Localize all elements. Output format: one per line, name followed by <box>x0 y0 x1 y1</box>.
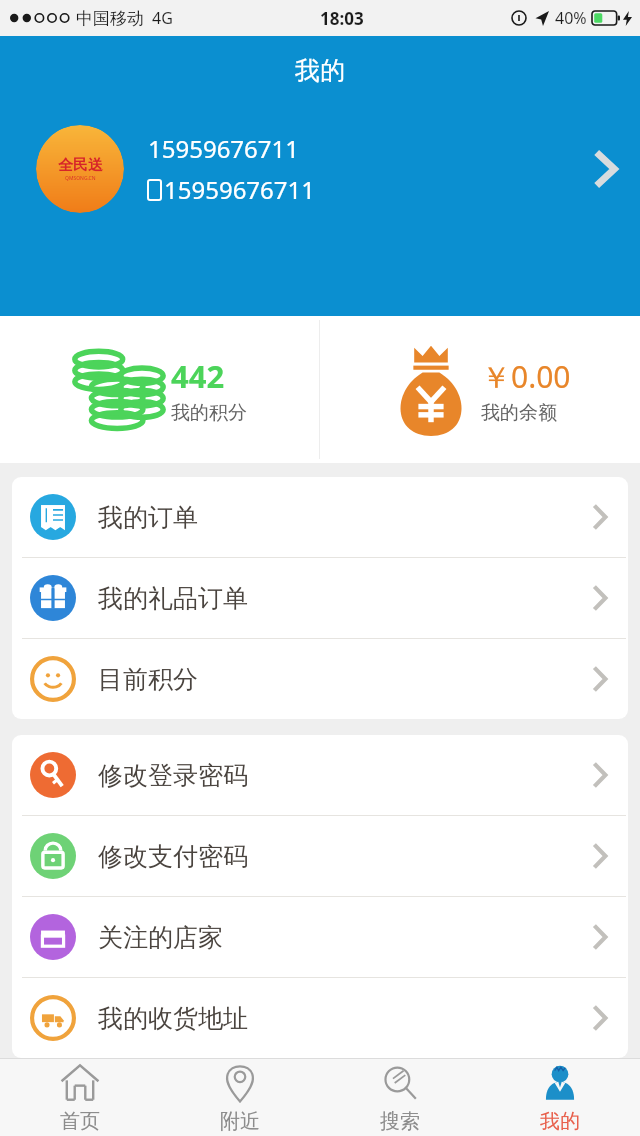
staticText: QMSONG.CN <box>65 175 96 182</box>
staticText: 15959676711 <box>148 132 300 165</box>
staticText: 40% <box>555 7 587 29</box>
button[interactable]: 我的订单 <box>12 477 628 557</box>
button[interactable]: 442 <box>0 316 319 463</box>
button[interactable]: 目前积分 <box>12 639 628 719</box>
staticText: 附近 <box>220 1109 260 1134</box>
staticText: 我的礼品订单 <box>98 583 248 614</box>
staticText: 我的余额 <box>481 401 557 425</box>
staticText: 中国移动 <box>76 8 144 29</box>
staticText: 4G <box>152 7 173 29</box>
staticText: 我的收货地址 <box>98 1003 248 1034</box>
staticText: ￥0.00 <box>481 356 571 397</box>
button[interactable]: 附近 <box>160 1059 320 1136</box>
staticText: 首页 <box>60 1109 100 1134</box>
button[interactable]: 我的礼品订单 <box>12 558 628 638</box>
button[interactable]: 关注的店家 <box>12 897 628 977</box>
staticText: 15959676711 <box>164 173 316 206</box>
button[interactable]: 修改支付密码 <box>12 816 628 896</box>
staticText: 18:03 <box>320 7 364 30</box>
other: Profile details <box>592 146 618 192</box>
staticText: 我的积分 <box>171 401 247 425</box>
staticText: 我的 <box>540 1109 580 1134</box>
staticText: 关注的店家 <box>98 922 223 953</box>
button[interactable]: 首页 <box>0 1059 160 1136</box>
staticText: 全民送 <box>58 156 103 175</box>
staticText: 我的订单 <box>98 502 198 533</box>
button[interactable]: ￥0.00 <box>320 316 640 463</box>
staticText: 442 <box>171 355 225 397</box>
staticText: 我的 <box>295 55 345 86</box>
button[interactable]: 我的收货地址 <box>12 978 628 1058</box>
button[interactable]: 我的 <box>480 1059 640 1136</box>
staticText: 搜索 <box>380 1109 420 1134</box>
button[interactable]: 全民送 <box>0 104 640 234</box>
button[interactable]: 搜索 <box>320 1059 480 1136</box>
staticText: 修改支付密码 <box>98 841 248 872</box>
staticText: 目前积分 <box>98 664 198 695</box>
button[interactable]: 修改登录密码 <box>12 735 628 815</box>
staticText: 修改登录密码 <box>98 760 248 791</box>
